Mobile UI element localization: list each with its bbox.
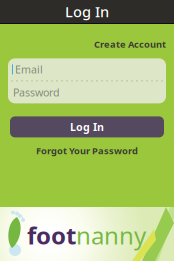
button[interactable]: Forgot Your Password [31,142,143,159]
button[interactable]: Create Account [91,35,169,53]
button[interactable]: Log In [10,116,164,137]
staticText: Password [13,85,60,99]
staticText: Log In [65,2,109,21]
staticText: foot [27,219,76,251]
staticText: nanny [76,219,146,251]
staticText: Forgot Your Password [36,144,138,157]
staticText: Email [15,62,43,76]
staticText: Create Account [94,38,166,50]
staticText: Log In [70,120,104,134]
